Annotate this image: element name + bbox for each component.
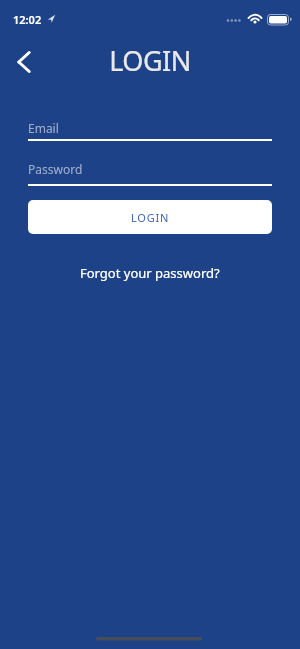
button[interactable]: Forgot your password?	[0, 260, 300, 286]
staticText: Password	[28, 161, 83, 177]
staticText: LOGIN	[131, 210, 170, 225]
staticText: LOGIN	[0, 42, 300, 79]
staticText: Email	[28, 120, 59, 136]
button[interactable]: LOGIN	[28, 200, 272, 234]
button[interactable]	[6, 44, 42, 80]
staticText: Forgot your password?	[80, 264, 220, 282]
staticText: 12:02	[13, 12, 42, 27]
